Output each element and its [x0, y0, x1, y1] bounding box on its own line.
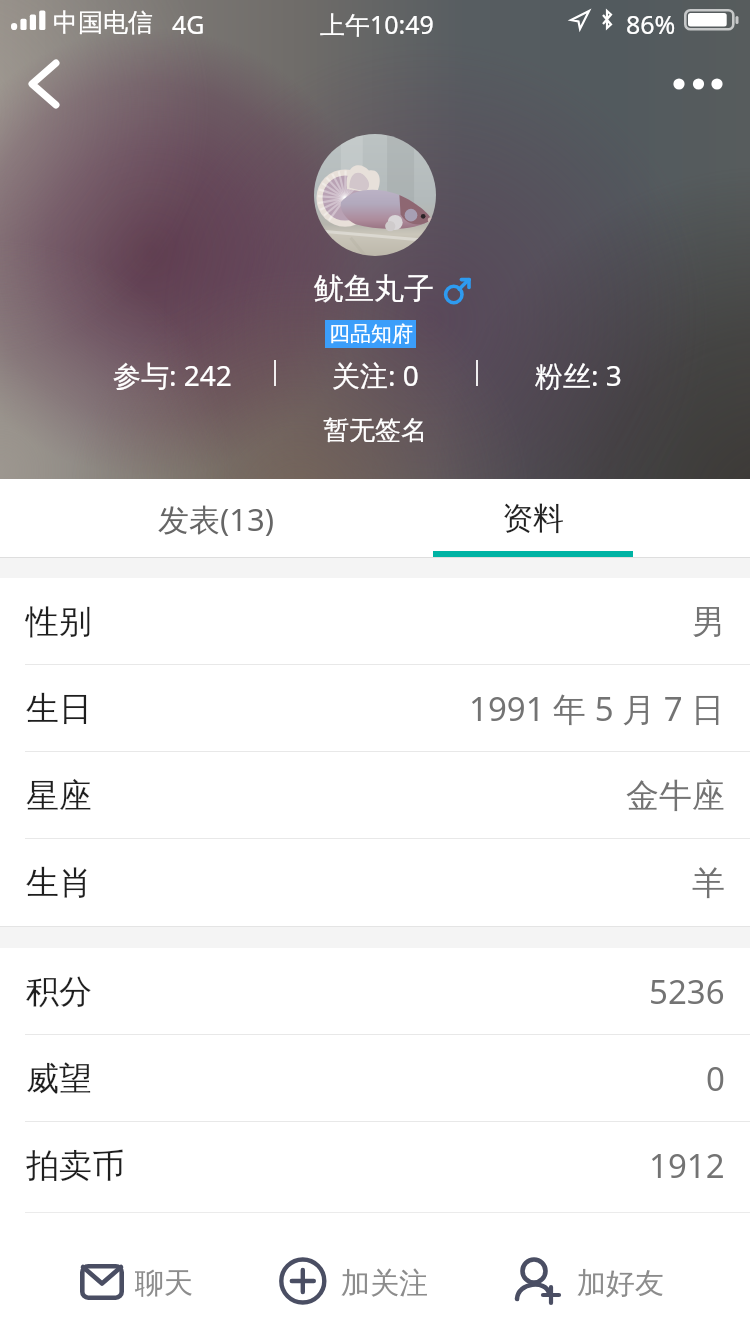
- staticText: 加好友: [577, 1265, 664, 1302]
- staticText: 粉丝: 3: [535, 356, 622, 390]
- staticText: 资料: [502, 499, 564, 538]
- staticText: 1912: [649, 1143, 725, 1188]
- staticText: 男: [692, 601, 725, 643]
- button[interactable]: 生肖: [0, 839, 750, 926]
- button[interactable]: 加关注: [276, 1248, 496, 1308]
- staticText: 关注: 0: [332, 356, 419, 390]
- staticText: 4G: [172, 7, 205, 41]
- staticText: 性别: [26, 601, 92, 643]
- staticText: 1991 年 5 月 7 日: [469, 686, 725, 731]
- staticText: 羊: [692, 862, 725, 904]
- button[interactable]: 四品知府: [325, 320, 416, 348]
- button[interactable]: 参与: 242: [72, 356, 272, 390]
- staticText: 加关注: [341, 1265, 428, 1302]
- staticText: 生肖: [26, 862, 92, 904]
- button[interactable]: 关注: 0: [275, 356, 475, 390]
- staticText: 积分: [26, 971, 92, 1013]
- button[interactable]: 性别: [0, 578, 750, 665]
- staticText: 生日: [26, 688, 92, 730]
- staticText: 86%: [626, 7, 676, 41]
- staticText: 发表(13): [158, 498, 275, 540]
- button[interactable]: More options: [655, 56, 741, 112]
- staticText: 威望: [26, 1058, 92, 1100]
- staticText: 0: [706, 1056, 725, 1101]
- staticText: 暂无签名: [323, 414, 427, 447]
- staticText: 拍卖币: [26, 1145, 125, 1187]
- button[interactable]: 聊天: [70, 1248, 270, 1308]
- staticText: 四品知府: [329, 321, 413, 347]
- button[interactable]: 生日: [0, 665, 750, 752]
- staticText: 金牛座: [626, 775, 725, 817]
- button[interactable]: 加好友: [512, 1248, 732, 1308]
- button[interactable]: 拍卖币: [0, 1122, 750, 1209]
- staticText: 参与: 242: [113, 356, 232, 390]
- staticText: 聊天: [135, 1265, 193, 1302]
- button[interactable]: Profile photo: [314, 134, 436, 256]
- button[interactable]: 威望: [0, 1035, 750, 1122]
- staticText: 星座: [26, 775, 92, 817]
- button[interactable]: 资料: [433, 479, 633, 558]
- button[interactable]: 星座: [0, 752, 750, 839]
- button[interactable]: 发表(13): [116, 479, 316, 558]
- button[interactable]: 粉丝: 3: [478, 356, 678, 390]
- staticText: 5236: [649, 969, 725, 1014]
- button[interactable]: 积分: [0, 948, 750, 1035]
- staticText: 上午10:49: [320, 7, 434, 41]
- staticText: 中国电信: [53, 7, 153, 38]
- staticText: 鱿鱼丸子: [314, 270, 434, 308]
- button[interactable]: Back: [4, 50, 84, 118]
